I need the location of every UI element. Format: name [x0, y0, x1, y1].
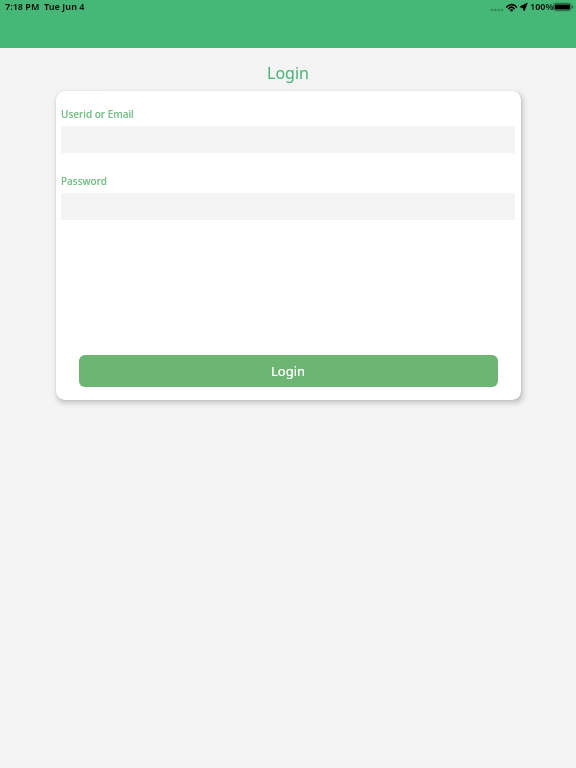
- staticText: Password: [61, 174, 107, 188]
- staticText: Userid or Email: [61, 107, 134, 121]
- other: Location services active: [519, 1, 529, 12]
- staticText: Login: [267, 62, 309, 84]
- other: Cellular signal: [490, 7, 504, 13]
- staticText: Login: [271, 362, 306, 380]
- staticText: 100%: [530, 0, 554, 12]
- staticText: Tue Jun 4: [44, 0, 85, 12]
- other: Battery full: [553, 2, 575, 13]
- staticText: 7:18 PM: [5, 0, 40, 12]
- other: Wi-Fi: [505, 1, 519, 12]
- button[interactable]: Login: [79, 355, 498, 387]
